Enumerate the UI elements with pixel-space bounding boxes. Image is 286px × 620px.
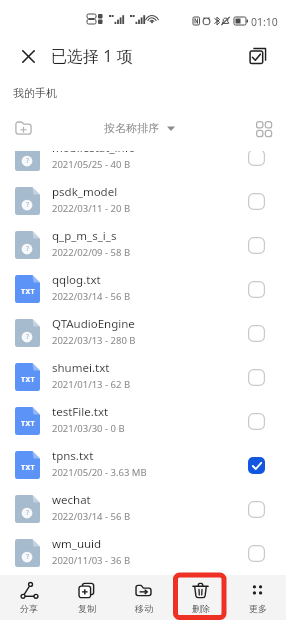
staticText: testFile.txt <box>52 404 109 420</box>
button[interactable]: Select file <box>239 443 273 487</box>
staticText: TXT <box>21 375 35 385</box>
staticText: 2021/05/25 - 40 B <box>52 158 131 171</box>
button[interactable]: Close <box>12 32 45 80</box>
staticText: 已选择 1 项 <box>51 45 133 67</box>
staticText: 2022/03/11 - 20 B <box>52 202 131 215</box>
button[interactable]: TXT <box>0 355 286 399</box>
staticText: wechat <box>52 492 91 508</box>
staticText: ? <box>26 156 30 166</box>
staticText: 更多 <box>249 603 267 614</box>
staticText: ? <box>26 332 30 342</box>
button[interactable]: 移动 <box>115 575 172 620</box>
staticText: wm_uuid <box>52 536 102 552</box>
button[interactable]: ? <box>0 531 286 575</box>
staticText: 复制 <box>78 603 96 614</box>
button[interactable]: ? <box>0 151 286 179</box>
staticText: TXT <box>21 287 35 297</box>
staticText: psdk_model <box>52 184 118 200</box>
button[interactable]: ? <box>0 487 286 531</box>
button[interactable]: Select file <box>239 179 273 223</box>
staticText: 移动 <box>135 603 153 614</box>
staticText: 按名称排序 <box>104 121 159 135</box>
button[interactable]: TXT <box>0 267 286 311</box>
button[interactable]: ? <box>0 179 286 223</box>
staticText: mobilestat_info <box>52 151 136 156</box>
button[interactable]: Select file <box>239 399 273 443</box>
button[interactable]: Grid view <box>250 115 276 141</box>
button[interactable]: 按名称排序 <box>104 121 175 135</box>
button[interactable]: 更多 <box>229 575 286 620</box>
button[interactable]: ? <box>0 311 286 355</box>
staticText: TXT <box>21 419 35 429</box>
button[interactable]: 复制 <box>58 575 115 620</box>
button[interactable]: Select file <box>239 311 273 355</box>
staticText: 2021/03/30 - 0 B <box>52 422 125 435</box>
button[interactable]: TXT <box>0 443 286 487</box>
staticText: tpns.txt <box>52 448 94 464</box>
staticText: ? <box>26 244 30 254</box>
button[interactable]: Select file <box>239 355 273 399</box>
staticText: 2021/01/13 - 62 B <box>52 378 131 391</box>
staticText: QTAudioEngine <box>52 316 135 332</box>
staticText: 2022/03/14 - 56 B <box>52 510 131 523</box>
staticText: ? <box>26 200 30 210</box>
staticText: 2021/05/20 - 3.63 MB <box>52 466 147 479</box>
staticText: 2020/11/03 - 36 B <box>52 554 131 567</box>
staticText: 我的手机 <box>13 86 57 100</box>
button[interactable]: New folder <box>9 109 37 146</box>
button[interactable]: Select file <box>239 267 273 311</box>
button[interactable]: 删除 <box>172 575 229 620</box>
button[interactable]: Select file <box>239 151 273 179</box>
staticText: q_p_m_s_i_s <box>52 228 117 244</box>
button[interactable]: TXT <box>0 399 286 443</box>
staticText: qqlog.txt <box>52 272 101 288</box>
button[interactable]: Select file <box>239 223 273 267</box>
button[interactable]: Select file <box>239 487 273 531</box>
staticText: 分享 <box>20 603 38 614</box>
staticText: 2022/03/13 - 280 B <box>52 334 136 347</box>
button[interactable]: ? <box>0 223 286 267</box>
button[interactable]: Select all <box>239 37 277 75</box>
staticText: ? <box>26 508 30 518</box>
staticText: 删除 <box>192 603 210 614</box>
button[interactable]: Select file <box>239 531 273 575</box>
staticText: 01:10 <box>251 15 278 29</box>
staticText: shumei.txt <box>52 360 110 376</box>
staticText: ? <box>26 552 30 562</box>
staticText: TXT <box>21 463 35 473</box>
button[interactable]: 分享 <box>0 575 58 620</box>
staticText: 2022/02/09 - 58 B <box>52 246 131 259</box>
staticText: 2022/03/14 - 56 B <box>52 290 131 303</box>
